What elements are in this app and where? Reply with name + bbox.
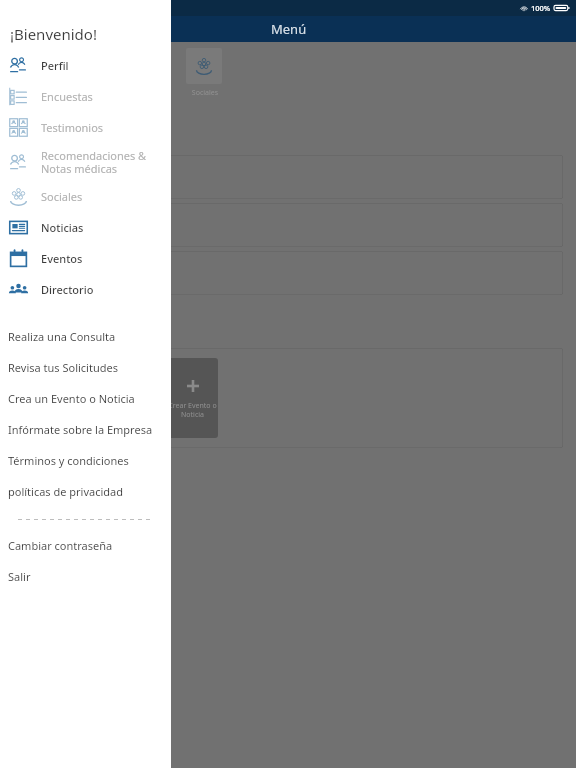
button[interactable]: Eventos [0, 243, 171, 274]
staticText: Términos y condiciones [8, 453, 129, 468]
staticText: Menú [271, 20, 307, 38]
button[interactable]: Perfil [0, 50, 171, 81]
staticText: Salir [8, 569, 31, 584]
staticText: Perfil [41, 58, 69, 73]
staticText: 100% [531, 3, 551, 13]
staticText: Realiza una Consulta [8, 329, 116, 344]
button[interactable]: Noticias [0, 212, 171, 243]
staticText: Noticias [41, 220, 84, 235]
button[interactable]: Recomendaciones & Notas médicas [0, 143, 171, 181]
staticText: Testimonios [41, 120, 104, 135]
staticText: Recomendaciones & Notas médicas [41, 148, 147, 176]
button[interactable]: Encuestas [0, 81, 171, 112]
button[interactable]: Testimonios [0, 112, 171, 143]
button[interactable]: Sociales [0, 181, 171, 212]
button[interactable]: Revisa tus Solicitudes [0, 352, 171, 383]
button[interactable]: Realiza una Consulta [0, 321, 171, 352]
staticText: Encuestas [41, 89, 93, 104]
button[interactable]: Crea un Evento o Noticia [0, 383, 171, 414]
button[interactable]: políticas de privacidad [0, 476, 171, 507]
staticText: Sociales [188, 88, 222, 98]
staticText: Directorio [41, 282, 94, 297]
staticText: Infórmate sobre la Empresa [8, 422, 153, 437]
button[interactable]: Directorio [0, 274, 171, 305]
button[interactable]: Salir [0, 561, 171, 592]
staticText: Eventos [41, 251, 83, 266]
button[interactable]: Términos y condiciones [0, 445, 171, 476]
staticText: Crear Evento o Noticia [168, 401, 217, 419]
staticText: Cambiar contraseña [8, 538, 113, 553]
staticText: ¡Bienvenido! [10, 24, 97, 44]
staticText: políticas de privacidad [8, 484, 124, 499]
staticText: Crea un Evento o Noticia [8, 391, 135, 406]
button[interactable]: Cambiar contraseña [0, 530, 171, 561]
staticText: Sociales [41, 189, 83, 204]
button[interactable]: Infórmate sobre la Empresa [0, 414, 171, 445]
staticText: Revisa tus Solicitudes [8, 360, 118, 375]
